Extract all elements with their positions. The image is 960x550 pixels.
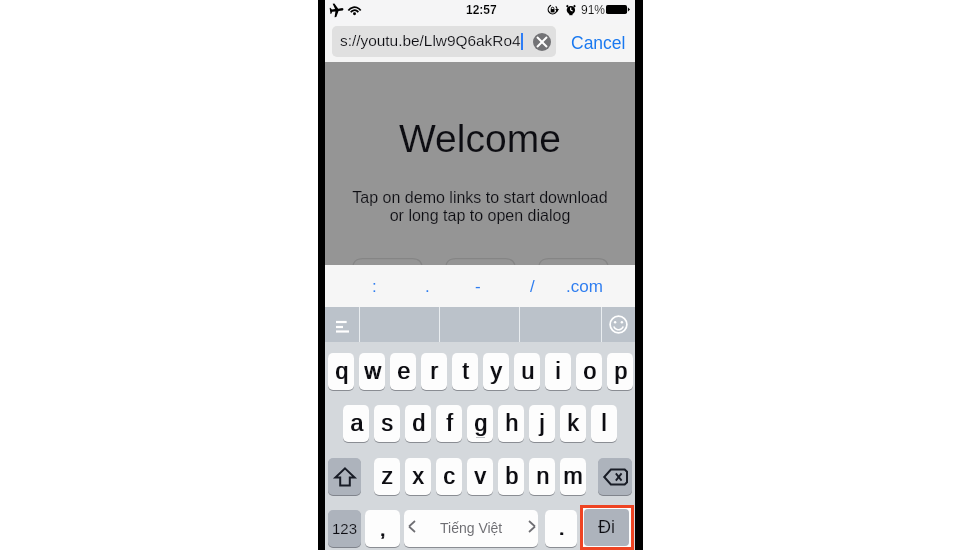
button[interactable]: s (374, 405, 400, 442)
button[interactable]: p (607, 353, 633, 390)
staticText: n (537, 463, 550, 489)
staticText: i (556, 358, 562, 384)
button[interactable]: : (349, 265, 399, 307)
button[interactable]: c (436, 458, 462, 495)
staticText: m (563, 463, 583, 489)
staticText: q (336, 358, 349, 384)
staticText: k (567, 410, 579, 436)
button[interactable]: k (560, 405, 586, 442)
button[interactable] (445, 258, 516, 265)
staticText: z (382, 463, 394, 489)
button[interactable]: y (483, 353, 509, 390)
staticText: e (397, 358, 410, 384)
button[interactable]: g (467, 405, 493, 442)
button[interactable]: w (359, 353, 385, 390)
button[interactable]: f (436, 405, 462, 442)
staticText: s (381, 410, 393, 436)
staticText: . (558, 514, 565, 540)
button[interactable]: .com (559, 265, 609, 307)
button[interactable]: Backspace (598, 458, 632, 495)
staticText: w (365, 358, 382, 384)
staticText: a (350, 410, 363, 436)
button[interactable]: Cancel (567, 24, 629, 61)
button[interactable]: m (560, 458, 586, 495)
staticText: h (505, 410, 518, 436)
staticText: s://youtu.be/Llw9Q6akRo4 (340, 32, 521, 49)
button[interactable]: . (402, 265, 452, 307)
staticText: d (412, 410, 425, 436)
staticText: q (335, 358, 348, 384)
staticText: u (521, 358, 534, 384)
staticText: / (530, 277, 535, 296)
staticText: k (568, 410, 580, 436)
button[interactable]: Shift (328, 458, 361, 495)
staticText: v (475, 463, 487, 489)
staticText: x (413, 463, 425, 489)
staticText: h (506, 410, 519, 436)
button[interactable]: j (529, 405, 555, 442)
staticText: s (382, 410, 394, 436)
button[interactable]: - (453, 265, 503, 307)
button[interactable]: o (576, 353, 602, 390)
button[interactable]: i (545, 353, 571, 390)
staticText: i (555, 358, 561, 384)
button[interactable]: Clear text (533, 33, 551, 51)
staticText: . (559, 514, 566, 540)
button[interactable]: h (498, 405, 524, 442)
button[interactable] (519, 307, 601, 342)
staticText: l (601, 410, 607, 436)
button[interactable]: / (507, 265, 557, 307)
staticText: d (413, 410, 426, 436)
button[interactable]: x (405, 458, 431, 495)
staticText: b (506, 463, 519, 489)
button[interactable]: v (467, 458, 493, 495)
button[interactable]: e (390, 353, 416, 390)
button[interactable]: t (452, 353, 478, 390)
staticText: u (522, 358, 535, 384)
button[interactable] (359, 307, 439, 342)
staticText: o (583, 358, 596, 384)
staticText: o (584, 358, 597, 384)
staticText: r (430, 358, 438, 384)
staticText: j (539, 410, 545, 436)
button[interactable]: Tiếng Việt (404, 510, 538, 547)
button[interactable]: s://youtu.be/Llw9Q6akRo4 (332, 26, 556, 57)
staticText: m (564, 463, 584, 489)
staticText: l (602, 410, 608, 436)
button[interactable] (439, 307, 520, 342)
staticText: n (536, 463, 549, 489)
button[interactable]: Input options (325, 307, 359, 342)
button[interactable]: , (365, 510, 400, 547)
button[interactable]: n (529, 458, 555, 495)
button[interactable]: q (328, 353, 354, 390)
button[interactable]: u (514, 353, 540, 390)
button[interactable]: Đi (584, 509, 629, 546)
button[interactable]: r (421, 353, 447, 390)
button[interactable]: Emoji (601, 307, 636, 342)
staticText: c (443, 463, 455, 489)
staticText: g (475, 410, 488, 436)
staticText: x (412, 463, 424, 489)
button[interactable]: 123 (328, 510, 361, 547)
staticText: , (380, 515, 387, 541)
button[interactable]: b (498, 458, 524, 495)
staticText: v (474, 463, 486, 489)
staticText: . (425, 277, 430, 296)
staticText: 91% (581, 3, 606, 16)
button[interactable]: . (545, 510, 577, 547)
staticText: t (462, 358, 469, 384)
button[interactable]: l (591, 405, 617, 442)
staticText: Cancel (571, 33, 626, 53)
button[interactable]: z (374, 458, 400, 495)
staticText: b (505, 463, 518, 489)
button[interactable] (538, 258, 609, 265)
button[interactable]: a (343, 405, 369, 442)
button[interactable] (352, 258, 423, 265)
staticText: r (431, 358, 439, 384)
staticText: 12:57 (466, 3, 497, 16)
button[interactable]: d (405, 405, 431, 442)
staticText: y (490, 358, 502, 384)
staticText: , (379, 515, 386, 541)
staticText: c (444, 463, 456, 489)
staticText: Tap on demo links to start download or l… (352, 189, 608, 224)
